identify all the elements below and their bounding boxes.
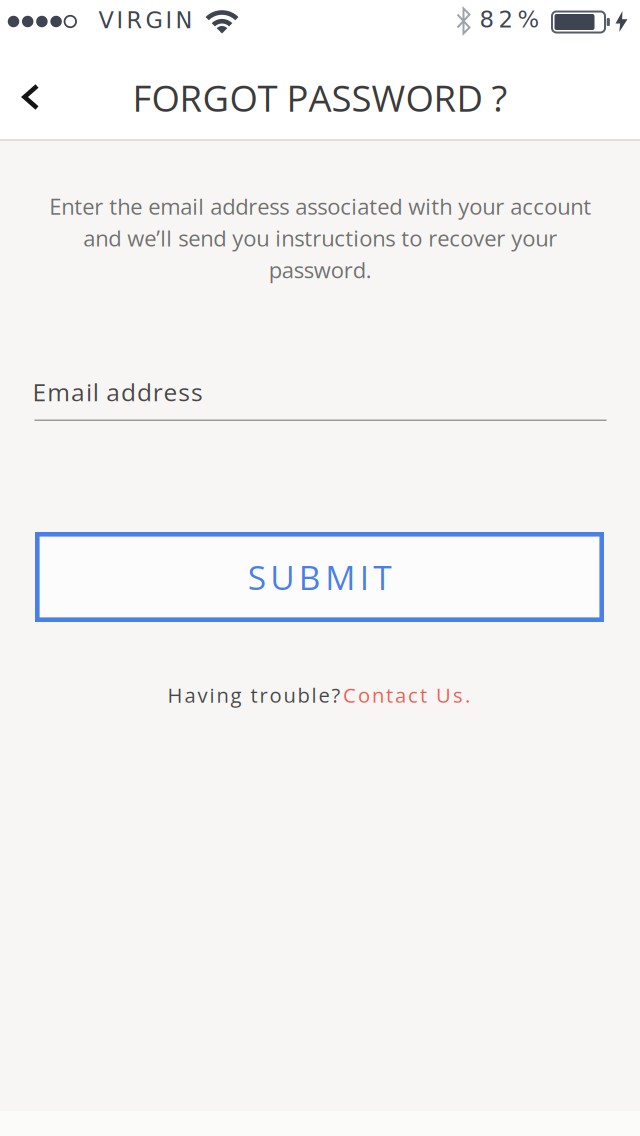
staticText: FORGOT PASSWORD ?: [132, 73, 507, 122]
staticText: Enter the email address associated with …: [49, 191, 591, 285]
button[interactable]: Back: [8, 69, 52, 125]
button[interactable]: Contact Us.: [316, 681, 496, 709]
button[interactable]: SUBMIT: [35, 532, 604, 622]
staticText: 82%: [479, 6, 539, 33]
staticText: Contact Us.: [343, 681, 470, 709]
staticText: Email address: [32, 375, 203, 408]
staticText: VIRGIN: [98, 7, 192, 34]
staticText: Having trouble?: [167, 681, 340, 709]
staticText: SUBMIT: [248, 554, 391, 600]
